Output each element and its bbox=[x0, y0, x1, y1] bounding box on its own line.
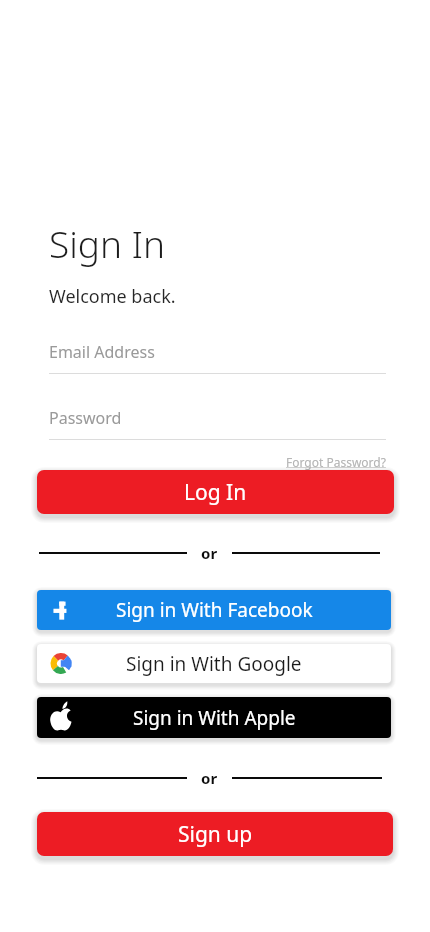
staticText: Email Address bbox=[49, 341, 155, 363]
button[interactable]: Sign in With Apple bbox=[37, 697, 391, 738]
button[interactable]: Sign up bbox=[37, 812, 393, 856]
button[interactable]: Forgot Password? bbox=[286, 454, 386, 470]
staticText: Welcome back. bbox=[49, 284, 176, 309]
button[interactable]: Sign in With Facebook bbox=[37, 590, 391, 630]
staticText: Sign In bbox=[49, 218, 166, 268]
button[interactable]: Log In bbox=[37, 470, 394, 514]
staticText: Log In bbox=[184, 478, 247, 507]
button[interactable]: Password bbox=[49, 407, 386, 440]
button[interactable]: Email Address bbox=[49, 341, 386, 374]
staticText: Sign in With Apple bbox=[133, 705, 296, 731]
staticText: Sign up bbox=[178, 820, 253, 849]
staticText: Sign in With Google bbox=[126, 651, 302, 677]
staticText: Password bbox=[49, 407, 122, 429]
staticText: or bbox=[201, 768, 218, 788]
staticText: or bbox=[201, 543, 218, 563]
button[interactable]: Sign in With Google bbox=[37, 644, 391, 683]
staticText: Sign in With Facebook bbox=[116, 597, 313, 623]
